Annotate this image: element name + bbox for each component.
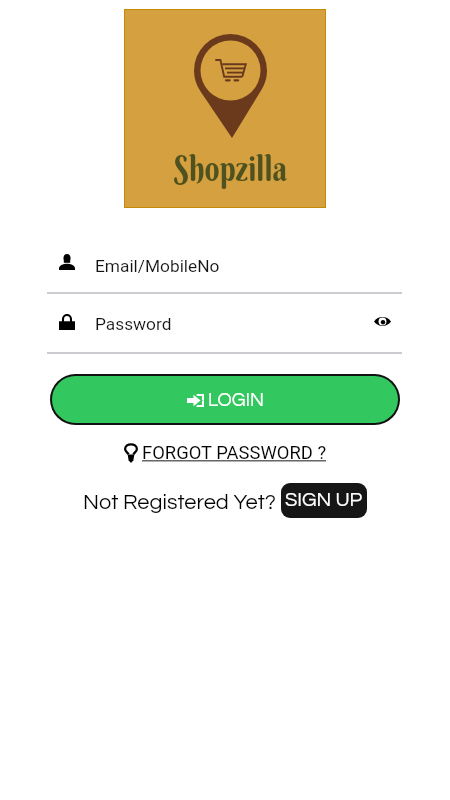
staticText: Not Registered Yet? (83, 491, 276, 513)
staticText: FORGOT PASSWORD ? (142, 442, 327, 464)
staticText: Password (95, 314, 172, 334)
button[interactable]: SIGN UP (281, 483, 367, 518)
staticText: Shopzilla (174, 147, 287, 190)
button[interactable]: Email/MobileNo (47, 240, 402, 292)
button[interactable]: Show password (370, 309, 394, 333)
button[interactable]: LOGIN (52, 376, 398, 423)
staticText: SIGN UP (285, 490, 363, 511)
staticText: LOGIN (208, 390, 264, 410)
button[interactable]: FORGOT PASSWORD ? (124, 442, 327, 464)
staticText: Email/MobileNo (95, 256, 220, 276)
